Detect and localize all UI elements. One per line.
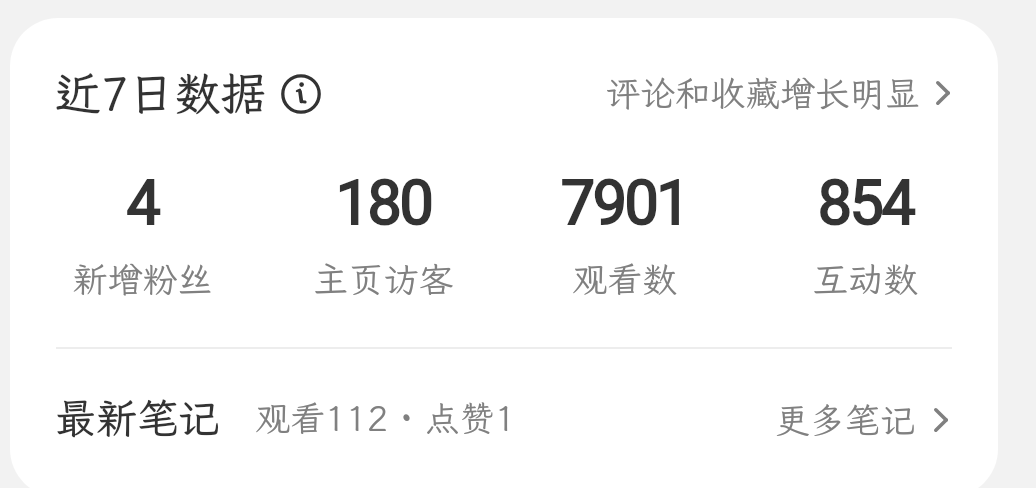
staticText: 854: [745, 160, 986, 250]
staticText: 更多笔记: [775, 397, 916, 443]
button[interactable]: 近7日数据: [55, 63, 321, 124]
staticText: 观看数: [504, 256, 745, 302]
staticText: 互动数: [745, 256, 986, 302]
staticText: 7901: [504, 160, 745, 250]
staticText: 观看112 · 点赞1: [255, 395, 516, 441]
other: 数据说明: [281, 74, 321, 114]
button[interactable]: 最新笔记: [55, 391, 516, 445]
button[interactable]: 4: [22, 160, 263, 250]
staticText: 新增粉丝: [22, 256, 263, 302]
staticText: 主页访客: [263, 256, 504, 302]
staticText: 评论和收藏增长明显: [605, 70, 921, 116]
button[interactable]: 854: [745, 160, 986, 250]
staticText: 最新笔记: [55, 391, 219, 445]
staticText: 近7日数据: [55, 63, 267, 124]
button[interactable]: 更多笔记: [775, 397, 948, 443]
button[interactable]: 180: [263, 160, 504, 250]
staticText: 4: [22, 160, 263, 250]
staticText: 180: [263, 160, 504, 250]
button[interactable]: 评论和收藏增长明显: [605, 70, 950, 116]
button[interactable]: 7901: [504, 160, 745, 250]
